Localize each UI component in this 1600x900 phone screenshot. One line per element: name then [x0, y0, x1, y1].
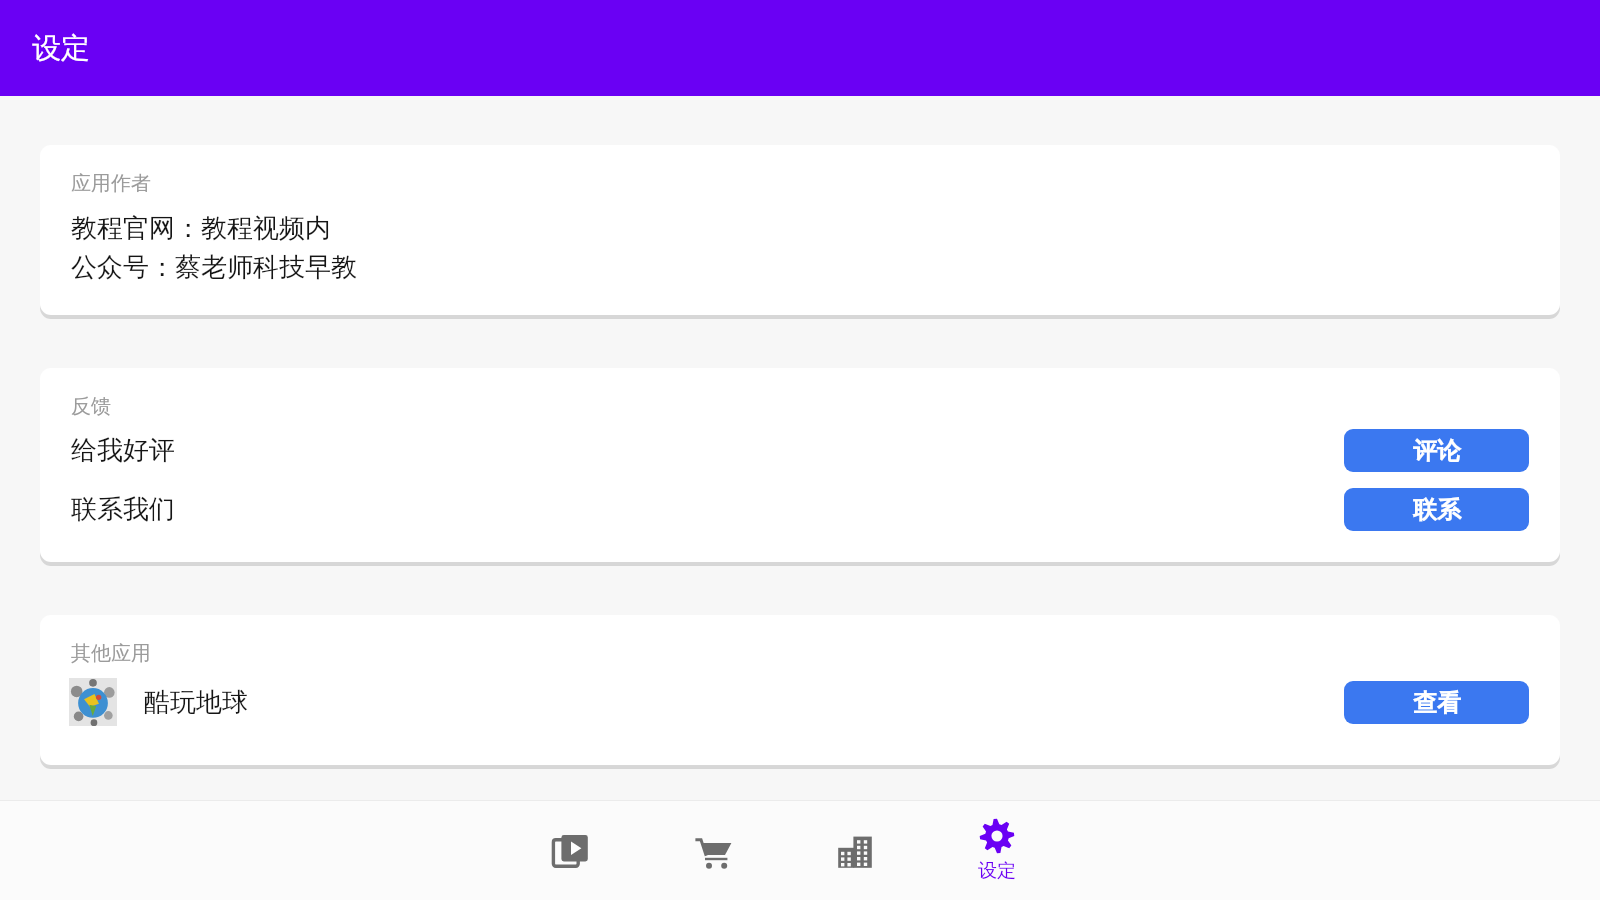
staticText: 联系我们	[71, 493, 175, 526]
button[interactable]: Business	[784, 801, 926, 900]
button[interactable]: 给我好评	[40, 429, 1560, 472]
button[interactable]: 联系我们	[40, 488, 1560, 531]
staticText: 应用作者	[71, 171, 151, 196]
staticText: 联系	[1413, 495, 1461, 525]
staticText: 设定	[32, 30, 90, 67]
staticText: 给我好评	[71, 434, 175, 467]
button[interactable]: 评论	[1344, 429, 1529, 472]
staticText: 公众号：蔡老师科技早教	[71, 251, 357, 284]
button[interactable]: 设定	[926, 801, 1068, 900]
button[interactable]: 联系	[1344, 488, 1529, 531]
button[interactable]: Video library	[500, 801, 642, 900]
staticText: 反馈	[71, 394, 111, 419]
staticText: 评论	[1413, 436, 1461, 466]
staticText: 其他应用	[71, 641, 151, 666]
button[interactable]: Shop	[642, 801, 784, 900]
button[interactable]: 酷玩地球	[40, 676, 1560, 728]
staticText: 设定	[978, 859, 1016, 883]
button[interactable]: 查看	[1344, 681, 1529, 724]
staticText: 酷玩地球	[144, 686, 248, 719]
staticText: 查看	[1413, 688, 1461, 718]
staticText: 教程官网：教程视频内	[71, 212, 331, 245]
